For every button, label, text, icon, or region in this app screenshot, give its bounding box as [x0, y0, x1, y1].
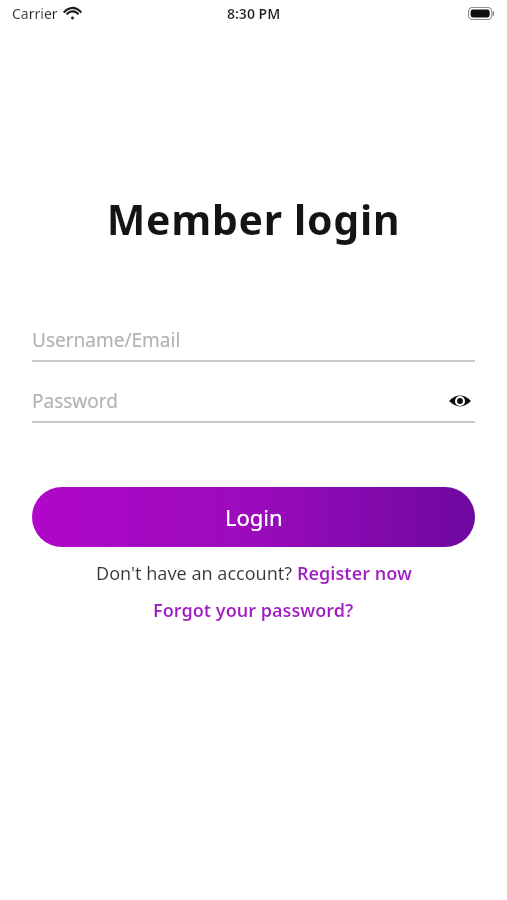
staticText: Password	[32, 388, 118, 414]
button[interactable]: Forgot your password?	[153, 598, 354, 623]
staticText: Register now	[297, 561, 412, 586]
staticText: Carrier	[12, 4, 58, 23]
staticText: Username/Email	[32, 327, 181, 353]
staticText: Login	[225, 502, 283, 532]
button[interactable]: Password	[32, 381, 475, 423]
button[interactable]: Username/Email	[32, 320, 475, 362]
staticText: Don't have an account?	[96, 561, 297, 586]
button[interactable]: Show password	[445, 386, 475, 416]
button[interactable]: Register now	[297, 561, 412, 586]
staticText: Member login	[0, 191, 507, 247]
other: Wi-Fi signal	[64, 7, 81, 20]
other: Battery full	[468, 7, 495, 20]
staticText: 8:30 PM	[227, 4, 281, 23]
button[interactable]: Login	[32, 487, 475, 547]
staticText: Forgot your password?	[153, 598, 354, 623]
